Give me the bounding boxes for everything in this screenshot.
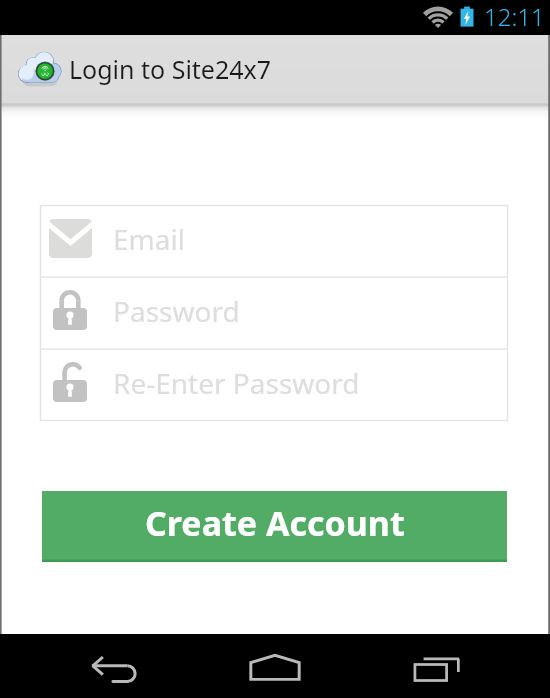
staticText: Re-Enter Password [113,364,360,402]
staticText: Email [113,220,185,258]
button[interactable]: Re-Enter Password [40,349,508,421]
button[interactable]: Back [74,634,154,698]
staticText: Password [113,292,240,330]
button[interactable]: Email [40,205,508,277]
button[interactable]: Create Account [42,491,507,562]
button[interactable]: Password [40,277,508,349]
staticText: Login to Site24x7 [69,52,272,86]
staticText: 12:11 [484,0,545,33]
button[interactable]: Login to Site24x7 [0,35,550,103]
button[interactable]: Home [235,634,315,698]
staticText: Create Account [145,500,405,546]
button[interactable]: Recent apps [397,634,477,698]
